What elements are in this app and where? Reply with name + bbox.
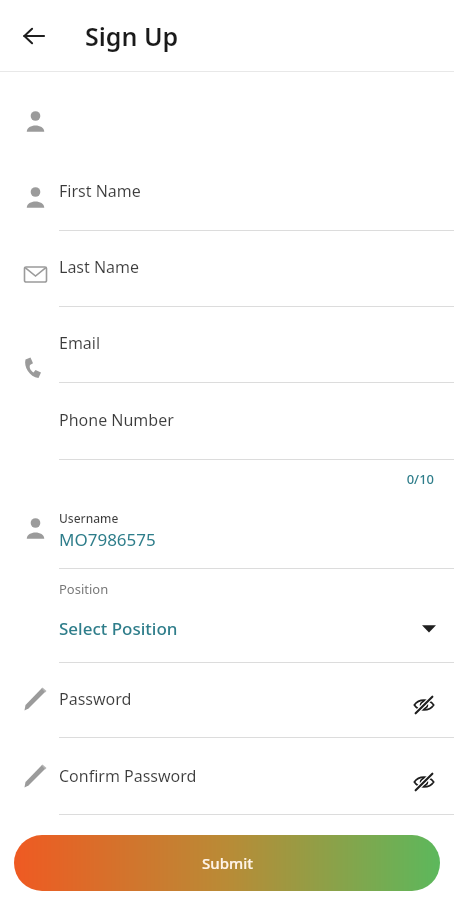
staticText: Sign Up [85, 19, 179, 53]
staticText: First Name [59, 180, 141, 202]
staticText: Select Position [59, 617, 178, 640]
button[interactable]: Show password [406, 687, 442, 723]
staticText: 0/10 [406, 470, 434, 488]
staticText: Confirm Password [59, 765, 197, 787]
staticText: Submit [202, 853, 253, 873]
button[interactable]: Submit [14, 835, 440, 891]
staticText: Last Name [59, 256, 140, 278]
button[interactable]: Show confirm password [406, 764, 442, 800]
staticText: Password [59, 688, 132, 710]
button[interactable]: Back [12, 14, 56, 58]
staticText: Position [59, 580, 109, 598]
staticText: Phone Number [59, 409, 174, 431]
button[interactable]: Select Position [0, 602, 454, 654]
staticText: MO7986575 [59, 528, 156, 551]
staticText: Email [59, 332, 101, 354]
staticText: Username [59, 510, 119, 526]
